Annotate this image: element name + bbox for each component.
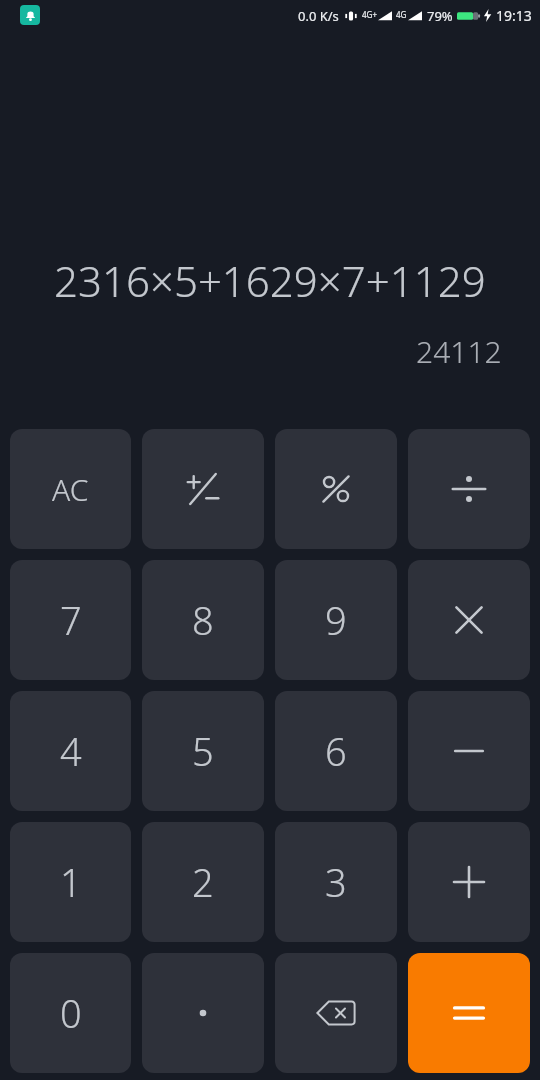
- staticText: 3: [325, 856, 347, 908]
- button[interactable]: 2: [142, 822, 264, 942]
- button[interactable]: 7: [10, 560, 131, 680]
- button[interactable]: Multiply: [408, 560, 530, 680]
- button[interactable]: 1: [10, 822, 131, 942]
- staticText: 0: [60, 987, 82, 1039]
- button[interactable]: Divide: [408, 429, 530, 549]
- button[interactable]: 3: [275, 822, 397, 942]
- button[interactable]: 9: [275, 560, 397, 680]
- button[interactable]: AC: [10, 429, 131, 549]
- button[interactable]: Plus: [408, 822, 530, 942]
- button[interactable]: 8: [142, 560, 264, 680]
- button[interactable]: Equals: [408, 953, 530, 1073]
- staticText: 5: [192, 725, 214, 777]
- button[interactable]: Percent: [275, 429, 397, 549]
- staticText: 6: [325, 725, 347, 777]
- button[interactable]: 5: [142, 691, 264, 811]
- button[interactable]: 0: [10, 953, 131, 1073]
- staticText: 0.0 K/s: [298, 7, 339, 25]
- button[interactable]: Plus minus: [142, 429, 264, 549]
- staticText: AC: [52, 469, 89, 510]
- button[interactable]: Decimal point: [142, 953, 264, 1073]
- staticText: 4G: [396, 9, 407, 20]
- button[interactable]: 4: [10, 691, 131, 811]
- button[interactable]: Minus: [408, 691, 530, 811]
- staticText: 19:13: [496, 6, 532, 25]
- button[interactable]: 6: [275, 691, 397, 811]
- staticText: 24112: [416, 331, 502, 372]
- button[interactable]: Backspace: [275, 953, 397, 1073]
- staticText: 4G+: [362, 9, 377, 20]
- staticText: 79%: [427, 7, 453, 25]
- staticText: 4: [60, 725, 82, 777]
- staticText: 2316×5+1629×7+1129: [54, 252, 486, 309]
- staticText: 1: [60, 856, 82, 908]
- staticText: 9: [325, 594, 347, 646]
- other: Notification: [20, 5, 40, 25]
- staticText: 8: [192, 594, 214, 646]
- staticText: 7: [60, 594, 82, 646]
- staticText: 2: [192, 856, 214, 908]
